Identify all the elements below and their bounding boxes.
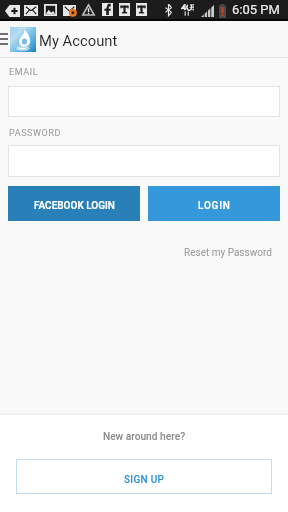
- button[interactable]: SIGN UP: [16, 459, 272, 494]
- staticText: LOGIN: [198, 200, 231, 212]
- button[interactable]: Email: [8, 86, 280, 117]
- button[interactable]: FACEBOOK LOGIN: [8, 186, 140, 221]
- button[interactable]: Password: [8, 145, 280, 177]
- button[interactable]: Reset my Password: [168, 242, 288, 264]
- staticText: SIGN UP: [124, 474, 165, 486]
- staticText: EMAIL: [9, 67, 39, 78]
- staticText: My Account: [39, 32, 118, 49]
- staticText: FACEBOOK LOGIN: [34, 200, 115, 212]
- button[interactable]: LOGIN: [148, 186, 280, 221]
- button[interactable]: App logo: [10, 27, 36, 52]
- button[interactable]: Open navigation menu: [0, 21, 10, 57]
- staticText: PASSWORD: [9, 128, 62, 139]
- staticText: New around here?: [0, 431, 288, 443]
- staticText: 6:05 PM: [232, 2, 280, 17]
